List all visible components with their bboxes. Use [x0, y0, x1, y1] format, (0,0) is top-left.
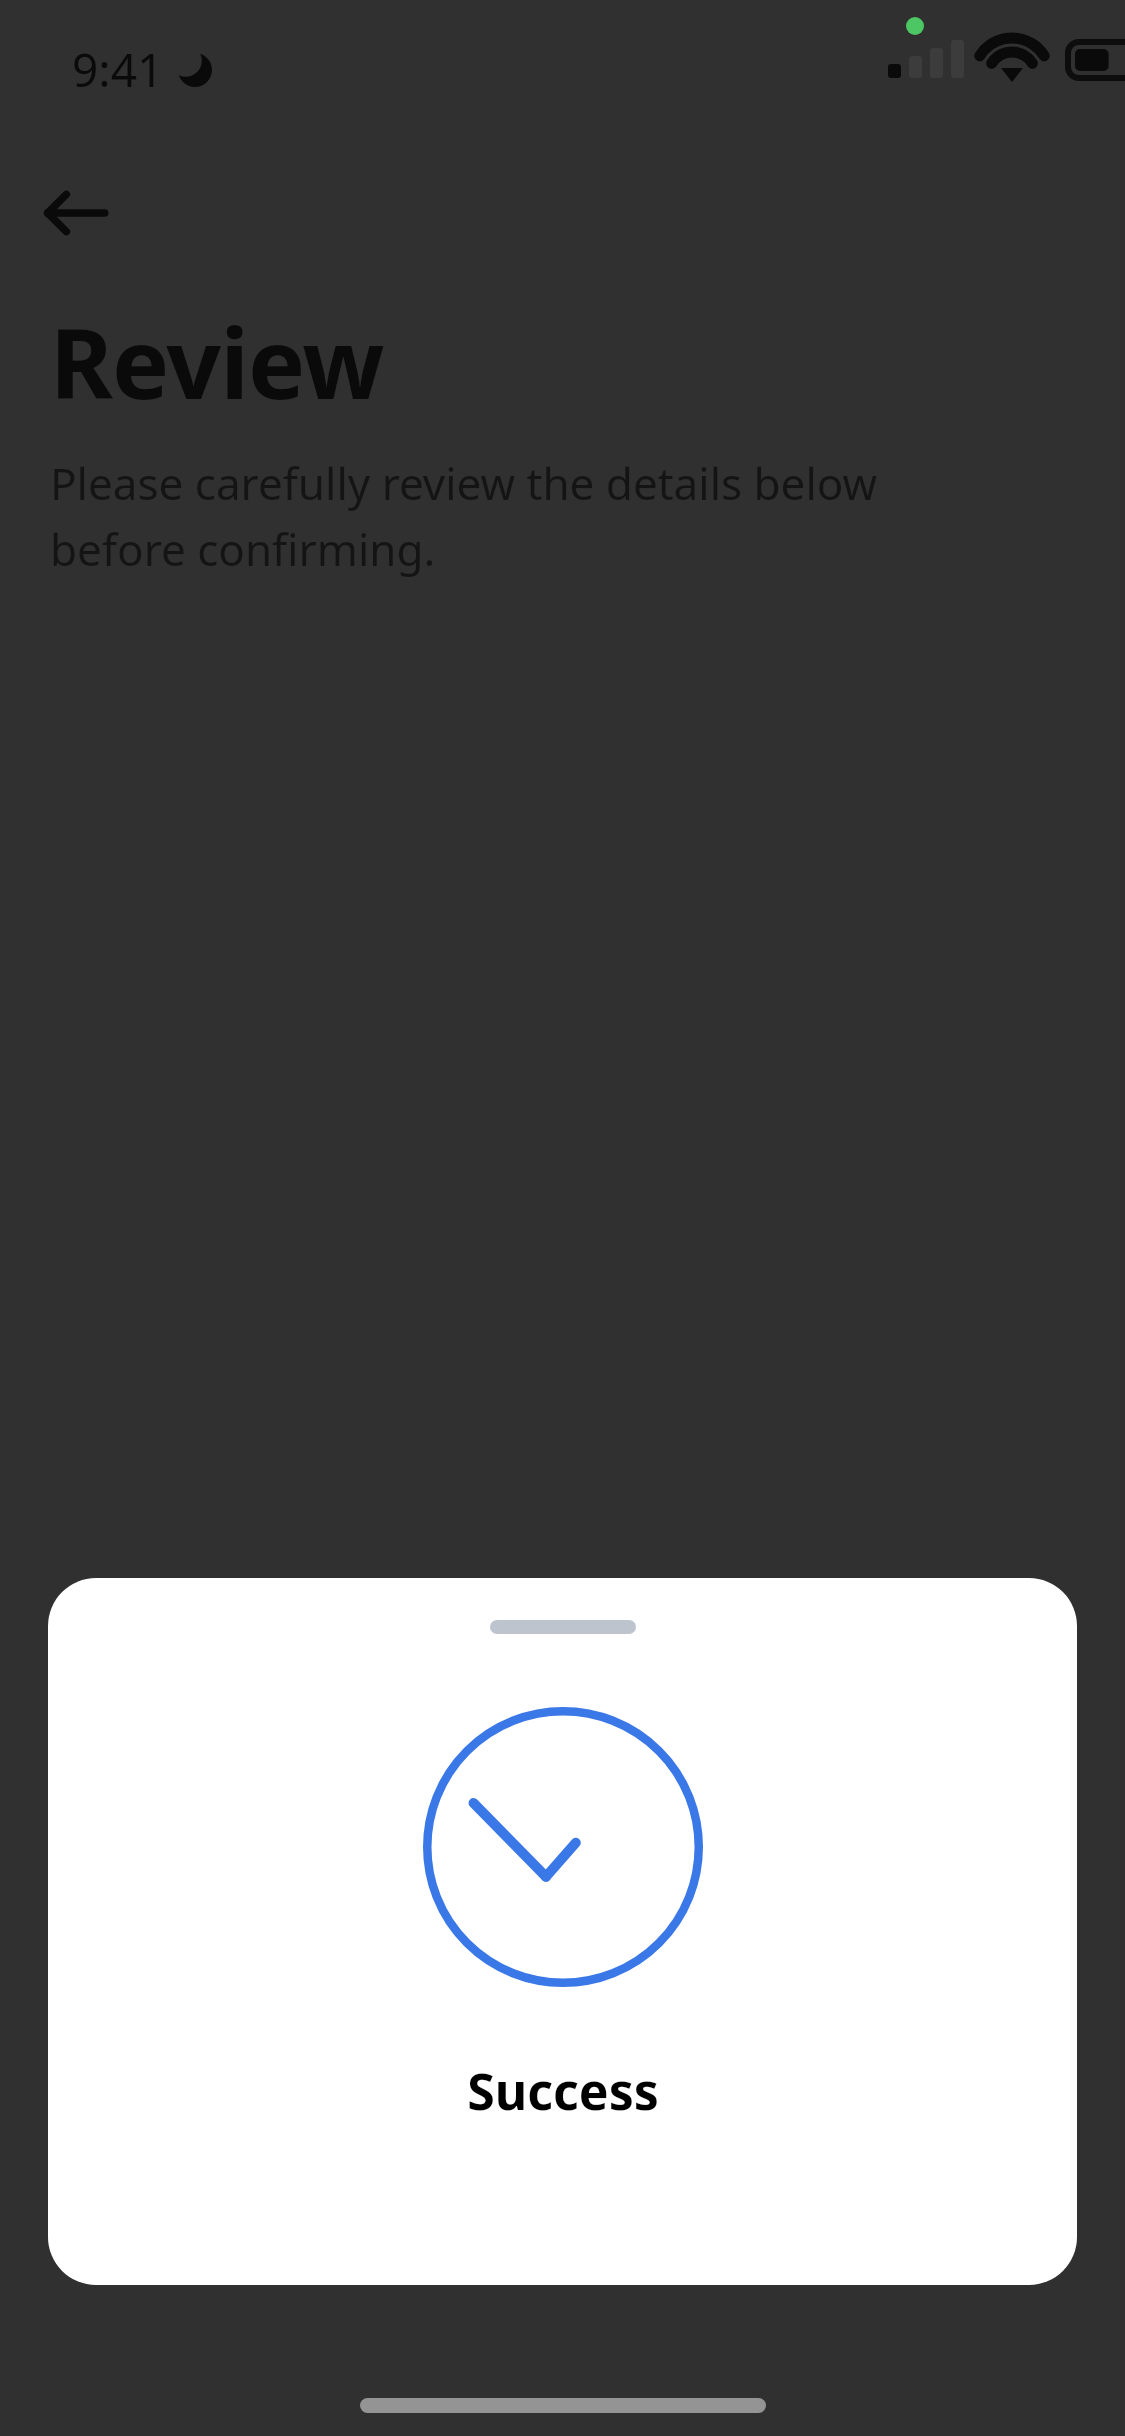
button[interactable]: Success — [48, 1578, 1077, 2285]
staticText: 9:41 — [72, 38, 164, 101]
staticText: Review — [50, 296, 384, 427]
button[interactable]: Back — [22, 160, 128, 266]
staticText: Success — [467, 2057, 659, 2125]
staticText: Please carefully review the details belo… — [50, 453, 985, 579]
